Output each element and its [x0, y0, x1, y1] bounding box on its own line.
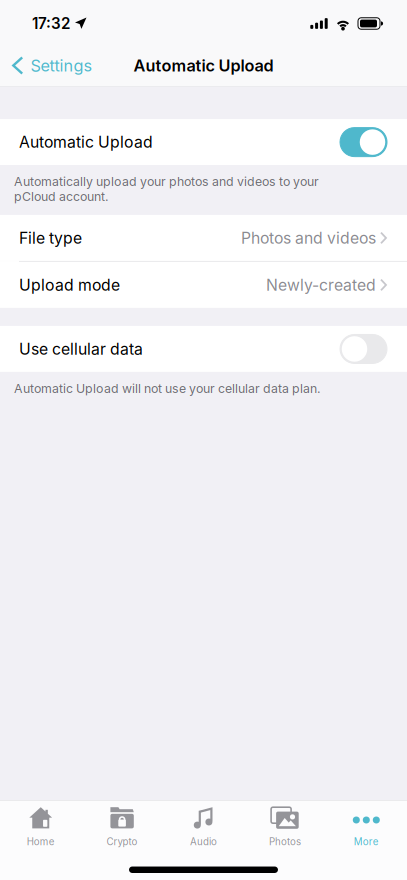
button[interactable]: File type [0, 215, 407, 261]
button[interactable]: Home [0, 802, 81, 848]
staticText: Automatic Upload [19, 133, 153, 152]
button[interactable]: Use cellular data [0, 326, 407, 372]
staticText: Photos [269, 836, 301, 848]
staticText: More [354, 836, 379, 848]
button[interactable]: Audio [163, 802, 244, 848]
button[interactable]: Automatic Upload [0, 119, 407, 165]
staticText: Upload mode [19, 275, 120, 294]
staticText: File type [19, 228, 82, 247]
staticText: Photos and videos [241, 228, 376, 247]
button[interactable]: More [326, 802, 407, 848]
staticText: Automatic Upload [133, 56, 273, 75]
staticText: Settings [30, 56, 92, 75]
staticText: Newly-created [266, 275, 376, 294]
staticText: 17:32 [32, 14, 70, 33]
button[interactable]: Upload mode [0, 262, 407, 308]
button[interactable]: Photos [244, 802, 326, 848]
button[interactable]: Crypto [81, 802, 163, 848]
staticText: Crypto [107, 836, 138, 848]
staticText: Automatic Upload will not use your cellu… [14, 381, 321, 396]
staticText: Audio [190, 836, 217, 848]
staticText: Home [27, 836, 55, 848]
button[interactable]: Settings [0, 45, 106, 85]
staticText: Automatically upload your photos and vid… [14, 174, 319, 204]
staticText: Use cellular data [19, 339, 143, 358]
